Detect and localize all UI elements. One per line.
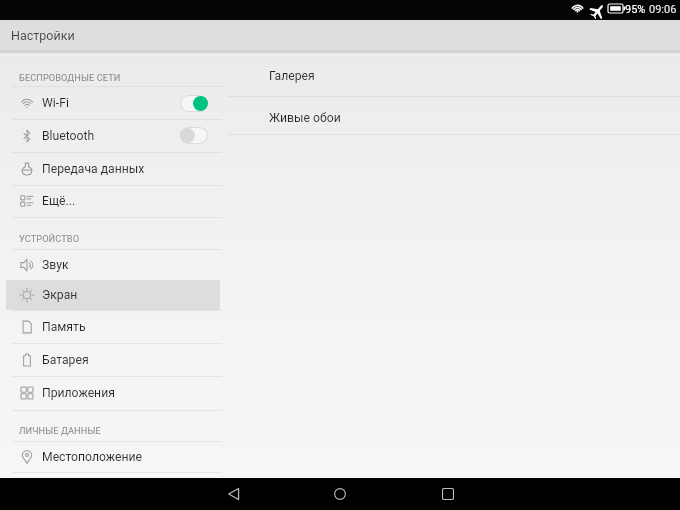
- staticText: Местоположение: [42, 450, 143, 464]
- button[interactable]: Wi-Fi: [6, 87, 220, 119]
- staticText: УСТРОЙСТВО: [19, 233, 80, 244]
- staticText: Экран: [42, 288, 78, 302]
- button[interactable]: Recent apps: [427, 478, 468, 510]
- staticText: Звук: [42, 258, 69, 272]
- button[interactable]: Экран: [6, 280, 220, 310]
- staticText: Галерея: [269, 69, 315, 83]
- button[interactable]: Приложения: [6, 376, 220, 410]
- button[interactable]: Батарея: [6, 343, 220, 376]
- staticText: Wi-Fi: [42, 96, 69, 110]
- button[interactable]: Живые обои: [226, 102, 680, 134]
- staticText: Bluetooth: [42, 129, 95, 143]
- button[interactable]: Галерея: [226, 56, 680, 96]
- button[interactable]: Включить: [180, 127, 208, 144]
- button[interactable]: Back: [213, 478, 254, 510]
- button[interactable]: Звук: [6, 249, 220, 280]
- button[interactable]: Выключить: [180, 95, 208, 112]
- staticText: Живые обои: [269, 111, 341, 125]
- staticText: Память: [42, 320, 86, 334]
- staticText: 95%: [625, 3, 646, 16]
- staticText: ЛИЧНЫЕ ДАННЫЕ: [19, 425, 101, 436]
- staticText: Передача данных: [42, 162, 145, 176]
- button[interactable]: Местоположение: [6, 441, 220, 472]
- staticText: Батарея: [42, 353, 89, 367]
- staticText: Приложения: [42, 386, 115, 400]
- button[interactable]: Bluetooth: [6, 119, 220, 152]
- staticText: Настройки: [11, 28, 75, 43]
- staticText: Ещё...: [42, 194, 76, 208]
- button[interactable]: Home: [319, 478, 360, 510]
- button[interactable]: Передача данных: [6, 152, 220, 185]
- staticText: БЕСПРОВОДНЫЕ СЕТИ: [19, 72, 121, 83]
- button[interactable]: Ещё...: [6, 185, 220, 217]
- staticText: 09:06: [649, 3, 677, 16]
- button[interactable]: Память: [6, 310, 220, 343]
